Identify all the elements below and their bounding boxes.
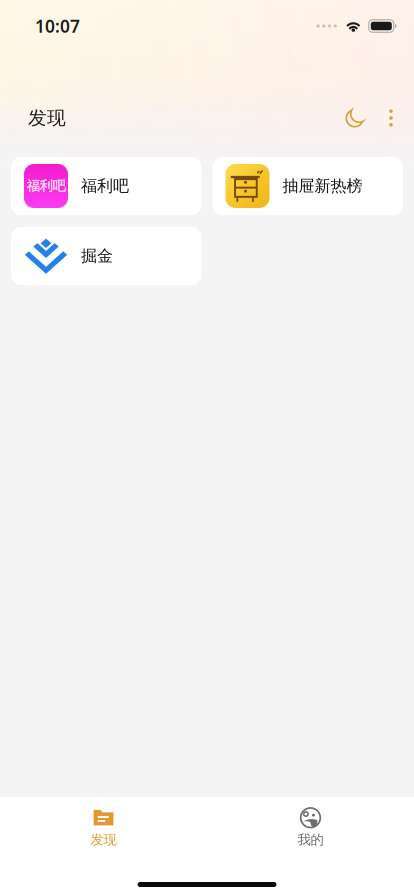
button[interactable]: More options bbox=[375, 96, 407, 140]
staticText: 福利吧 bbox=[26, 178, 65, 194]
button[interactable]: Dark mode bbox=[335, 96, 375, 140]
staticText: 10:07 bbox=[35, 14, 80, 37]
staticText: 发现 bbox=[90, 831, 116, 848]
staticText: 发现 bbox=[28, 106, 66, 129]
button[interactable]: 掘金 bbox=[11, 227, 201, 285]
button[interactable]: 发现 bbox=[0, 797, 207, 848]
button[interactable]: 抽屉新热榜 bbox=[212, 157, 403, 215]
staticText: 我的 bbox=[297, 831, 323, 848]
staticText: 福利吧 bbox=[81, 176, 129, 196]
button[interactable]: 我的 bbox=[207, 797, 414, 848]
staticText: 抽屉新热榜 bbox=[282, 176, 362, 196]
staticText: 掘金 bbox=[81, 246, 113, 266]
button[interactable]: 福利吧 bbox=[11, 157, 201, 215]
